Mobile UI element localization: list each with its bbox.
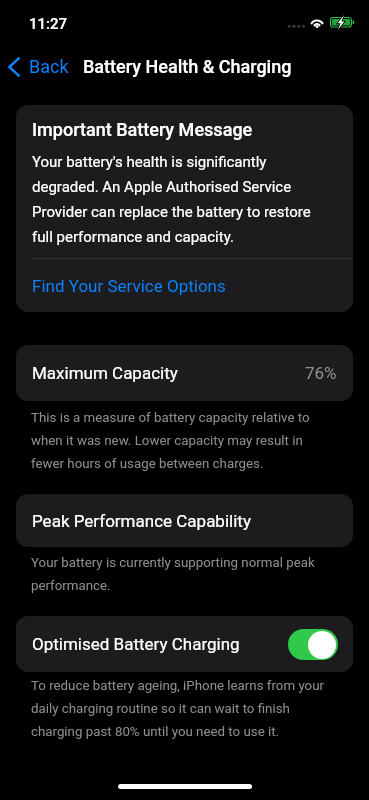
- staticText: To reduce battery ageing, iPhone learns …: [31, 672, 336, 741]
- staticText: 76%: [305, 363, 337, 383]
- staticText: Your battery's health is significantly d…: [32, 147, 329, 247]
- button[interactable]: Peak Performance Capability: [16, 494, 353, 547]
- staticText: Your battery is currently supporting nor…: [31, 549, 336, 595]
- button[interactable]: Optimised Battery Charging toggle, on: [288, 629, 338, 660]
- staticText: Optimised Battery Charging: [32, 634, 240, 654]
- staticText: 11:27: [29, 15, 68, 33]
- button[interactable]: Back: [0, 49, 79, 84]
- staticText: This is a measure of battery capacity re…: [31, 404, 336, 473]
- staticText: Battery Health & Charging: [83, 56, 292, 77]
- staticText: Peak Performance Capability: [32, 511, 251, 531]
- staticText: Back: [29, 56, 69, 77]
- button[interactable]: Optimised Battery Charging: [16, 616, 353, 672]
- staticText: Important Battery Message: [32, 119, 253, 140]
- staticText: Maximum Capacity: [32, 363, 178, 383]
- staticText: Find Your Service Options: [32, 276, 226, 296]
- button[interactable]: Find Your Service Options: [16, 259, 353, 312]
- button[interactable]: Maximum Capacity: [16, 345, 353, 401]
